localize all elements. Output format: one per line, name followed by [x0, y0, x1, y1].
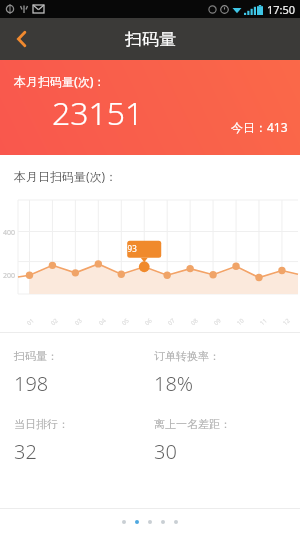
staticText: 12	[281, 317, 292, 327]
staticText: 订单转换率：	[154, 349, 220, 363]
staticText: 193	[123, 243, 137, 254]
staticText: 18%	[154, 370, 194, 397]
staticText: 02	[49, 317, 60, 327]
staticText: 198	[14, 370, 49, 397]
staticText: 200	[3, 271, 16, 281]
staticText: 本月扫码量(次)：	[14, 73, 106, 89]
button[interactable]: 离上一名差距：	[154, 417, 300, 465]
staticText: 01	[25, 317, 36, 327]
staticText: 05	[120, 317, 131, 327]
staticText: 03	[73, 317, 84, 327]
staticText: 今日：413	[231, 119, 288, 135]
staticText: 23151	[52, 91, 144, 135]
button[interactable]: Back	[0, 18, 44, 60]
staticText: 400	[3, 228, 16, 238]
button[interactable]	[135, 520, 139, 524]
staticText: 04	[97, 317, 108, 327]
staticText: 扫码量	[125, 29, 176, 50]
staticText: 当日排行：	[14, 417, 69, 431]
staticText: 本月日扫码量(次)：	[14, 168, 118, 184]
staticText: 10	[235, 317, 246, 327]
button[interactable]: 订单转换率：	[154, 349, 300, 397]
staticText: 11	[258, 317, 269, 327]
staticText: 32	[14, 438, 37, 465]
staticText: 30	[154, 438, 177, 465]
button[interactable]	[161, 520, 165, 524]
staticText: 离上一名差距：	[154, 417, 231, 431]
staticText: 06	[143, 317, 154, 327]
button[interactable]	[174, 520, 178, 524]
staticText: 扫码量：	[14, 349, 58, 363]
staticText: 07	[166, 317, 177, 327]
staticText: 08	[189, 317, 200, 327]
staticText: 17:50	[267, 2, 296, 17]
button[interactable]: 当日排行：	[14, 417, 150, 465]
button[interactable]	[122, 520, 126, 524]
button[interactable]: 扫码量：	[14, 349, 150, 397]
button[interactable]	[148, 520, 152, 524]
staticText: 09	[212, 317, 223, 327]
